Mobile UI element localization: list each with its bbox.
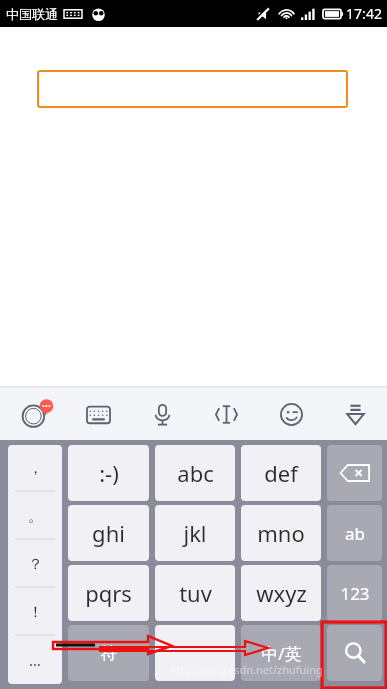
button[interactable]: 中/英	[241, 625, 321, 681]
button[interactable]: iFly input method	[17, 394, 57, 434]
button[interactable]: 123	[327, 565, 382, 621]
staticText: 中/英	[261, 642, 302, 665]
button[interactable]: Hide keyboard	[339, 398, 371, 430]
staticText: 符	[100, 643, 117, 664]
button[interactable]: ？	[8, 540, 62, 588]
staticText: ，	[28, 459, 43, 478]
button[interactable]: pqrs	[68, 565, 149, 621]
button[interactable]: ab	[327, 505, 382, 561]
staticText: ghi	[92, 518, 125, 548]
button[interactable]: ghi	[68, 505, 149, 561]
button[interactable]: …	[8, 636, 62, 684]
staticText: ！	[28, 603, 43, 622]
staticText: mno	[257, 518, 305, 548]
staticText: ab	[345, 522, 365, 545]
button[interactable]: Keyboard layout	[82, 398, 114, 430]
button[interactable]: wxyz	[241, 565, 321, 621]
button[interactable]: 符	[68, 625, 149, 681]
button[interactable]: :-)	[68, 445, 149, 501]
staticText: 。	[28, 507, 43, 526]
staticText: 17:42	[346, 4, 382, 23]
button[interactable]: tuv	[155, 565, 235, 621]
button[interactable]: Emoji	[275, 398, 307, 430]
staticText: jkl	[183, 518, 207, 548]
button[interactable]: Text editing	[210, 398, 242, 430]
button[interactable]: jkl	[155, 505, 235, 561]
staticText: pqrs	[85, 578, 132, 608]
button[interactable]: def	[241, 445, 321, 501]
staticText: def	[264, 458, 298, 488]
button[interactable]: ，	[8, 445, 62, 492]
staticText: tuv	[179, 578, 212, 608]
button[interactable]	[37, 70, 348, 108]
staticText: ？	[28, 555, 43, 574]
button[interactable]: Space	[155, 625, 235, 681]
button[interactable]: mno	[241, 505, 321, 561]
button[interactable]: ！	[8, 588, 62, 636]
staticText: wxyz	[256, 578, 307, 608]
button[interactable]: Delete	[327, 445, 382, 501]
button[interactable]: abc	[155, 445, 235, 501]
button[interactable]: Search	[327, 625, 382, 681]
button[interactable]: 。	[8, 492, 62, 540]
staticText: 123	[340, 582, 370, 605]
staticText: :-)	[99, 458, 119, 488]
staticText: http://blog.csdn.net/zhufuing	[170, 662, 323, 677]
button[interactable]: Voice input	[146, 398, 178, 430]
staticText: abc	[177, 458, 214, 488]
staticText: 中国联通	[6, 6, 58, 22]
staticText: …	[29, 650, 41, 670]
